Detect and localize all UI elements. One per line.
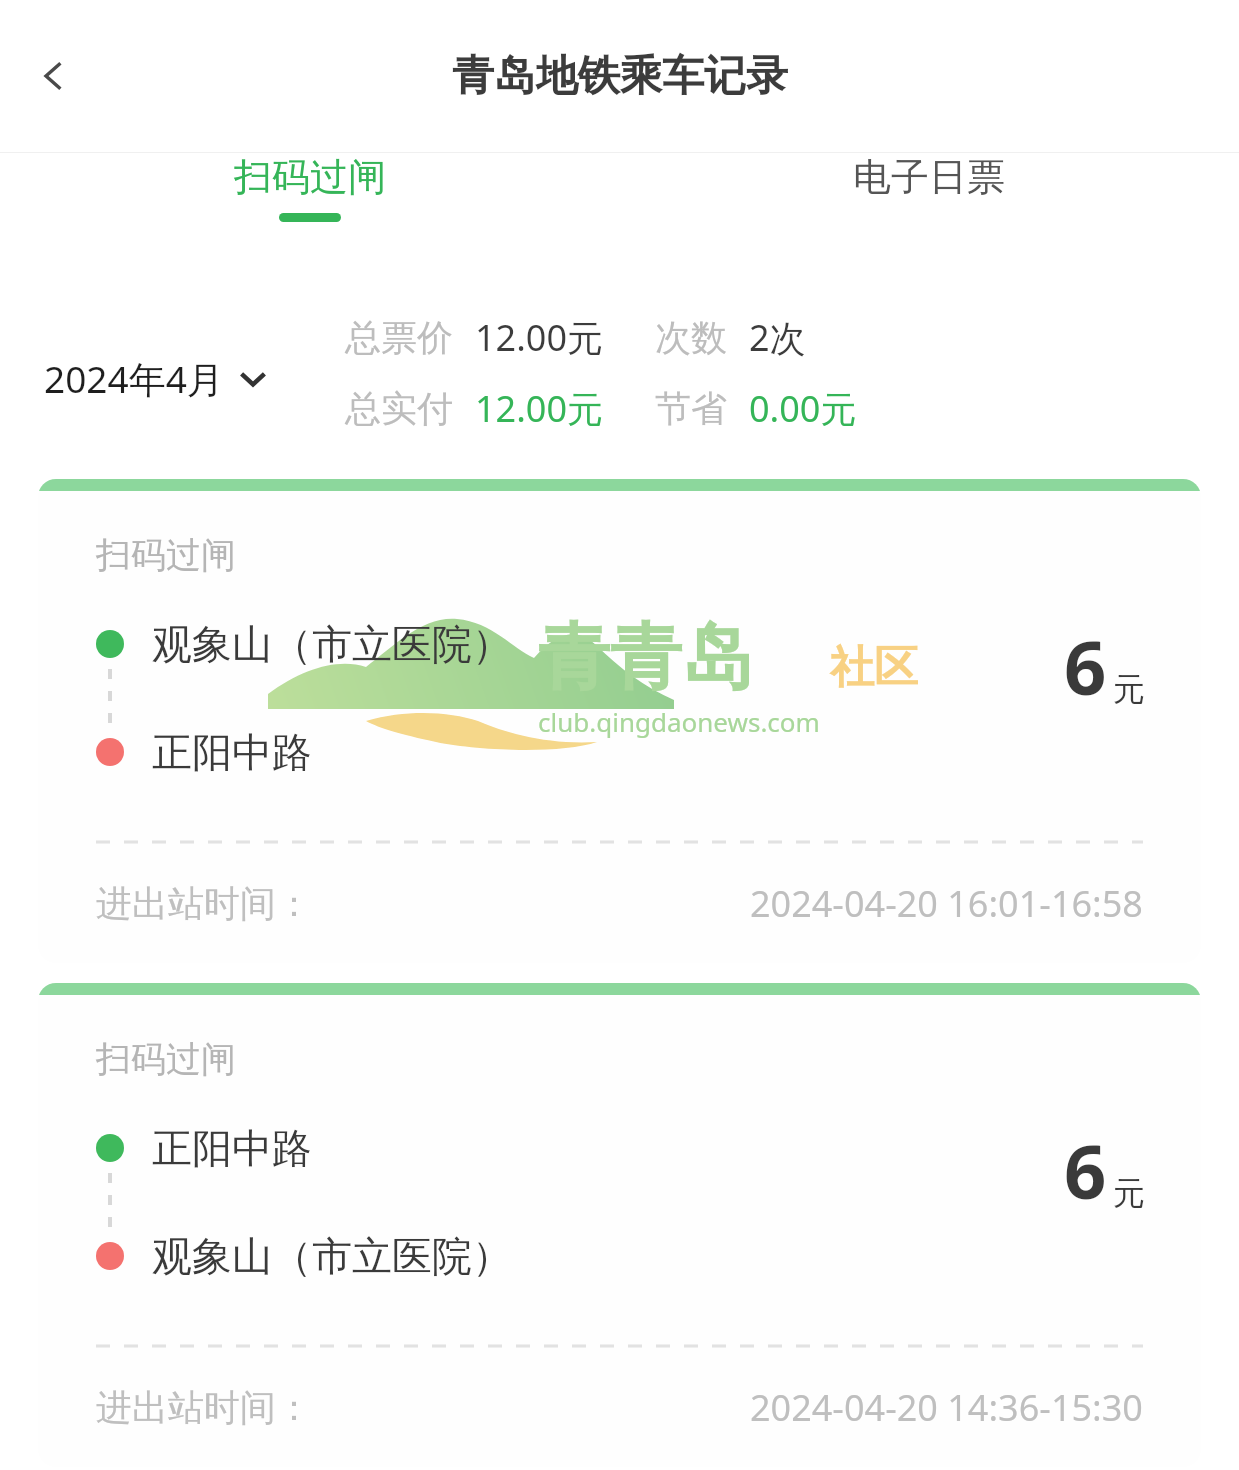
staticText: 次数 [655,315,727,360]
staticText: 正阳中路 [152,727,312,777]
staticText: 6 [1064,616,1107,717]
staticText: 扫码过闸 [96,533,236,577]
staticText: 扫码过闸 [96,1037,236,1081]
staticText: 6 [1064,1120,1107,1221]
button[interactable]: 扫码过闸 [38,983,1201,1467]
button[interactable]: Back [24,46,84,106]
staticText: 进出站时间： [96,881,312,926]
staticText: 正阳中路 [152,1123,312,1173]
button[interactable]: 扫码过闸 [0,153,619,222]
staticText: 总实付 [345,386,453,431]
staticText: 节省 [655,386,727,431]
staticText: 扫码过闸 [234,153,386,201]
staticText: 进出站时间： [96,1385,312,1430]
staticText: 12.00元 [475,313,604,362]
staticText: 电子日票 [853,153,1005,201]
staticText: 青青岛 [538,613,754,704]
staticText: 0.00元 [749,384,857,433]
staticText: 观象山（市立医院） [152,1231,512,1281]
staticText: 青岛地铁乘车记录 [452,50,788,103]
staticText: club.qingdaonews.com [538,704,820,739]
staticText: 2024-04-20 16:01-16:58 [750,879,1143,928]
staticText: 2024年4月 [44,353,224,404]
staticText: 社区 [830,640,918,695]
staticText: 12.00元 [475,384,604,433]
button[interactable]: 青青岛 [38,479,1201,963]
button[interactable]: 电子日票 [619,153,1239,222]
staticText: 2024-04-20 14:36-15:30 [750,1383,1143,1432]
button[interactable]: 2024年4月 [44,353,268,404]
staticText: 2次 [749,313,806,362]
staticText: 元 [1113,669,1145,709]
staticText: 观象山（市立医院） [152,619,512,669]
staticText: 总票价 [345,315,453,360]
staticText: 元 [1113,1173,1145,1213]
